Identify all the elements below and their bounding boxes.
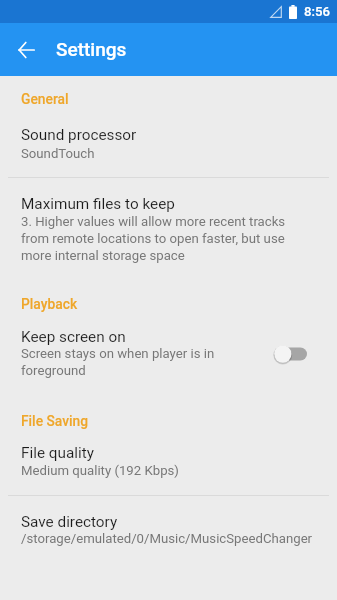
staticText: 3. Higher values will allow more recent …	[21, 214, 313, 264]
staticText: Save directory	[21, 513, 118, 531]
button[interactable]: File quality	[0, 444, 337, 478]
staticText: Maximum files to keep	[21, 195, 175, 213]
button[interactable]: Sound processor	[0, 126, 337, 161]
staticText: General	[21, 91, 69, 107]
staticText: File quality	[21, 444, 94, 462]
staticText: File Saving	[21, 413, 89, 429]
staticText: /storage/emulated/0/Music/MusicSpeedChan…	[21, 531, 313, 546]
staticText: Screen stays on when player is in foregr…	[21, 346, 266, 379]
button[interactable]: Keep screen on toggle	[273, 341, 313, 367]
staticText: SoundTouch	[21, 146, 95, 161]
staticText: Playback	[21, 296, 78, 312]
button[interactable]: Keep screen on	[0, 328, 337, 379]
button[interactable]: Save directory	[0, 513, 337, 546]
button[interactable]: Maximum files to keep	[0, 195, 337, 264]
staticText: 8:56	[304, 4, 330, 19]
staticText: Settings	[56, 38, 127, 60]
staticText: Medium quality (192 Kbps)	[21, 463, 179, 478]
button[interactable]: Back	[8, 32, 44, 68]
staticText: Sound processor	[21, 126, 137, 144]
staticText: Keep screen on	[21, 328, 126, 346]
